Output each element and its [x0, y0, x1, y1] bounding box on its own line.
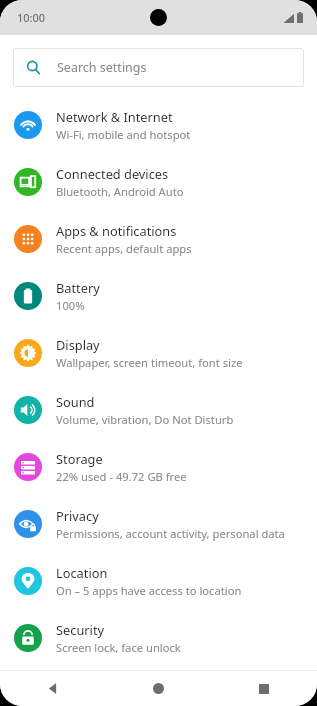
staticText: 100%	[56, 298, 85, 313]
staticText: Network & Internet	[56, 108, 173, 125]
button[interactable]: Security	[0, 609, 317, 666]
button[interactable]: Sound	[0, 381, 317, 438]
button[interactable]: Search settings	[13, 48, 304, 87]
staticText: Battery	[56, 279, 100, 296]
staticText: Display	[56, 336, 100, 353]
button[interactable]: Connected devices	[0, 153, 317, 210]
button[interactable]: Recent apps	[211, 671, 317, 706]
staticText: On – 5 apps have access to location	[56, 583, 242, 598]
staticText: 22% used - 49.72 GB free	[56, 469, 187, 484]
staticText: Connected devices	[56, 165, 169, 182]
staticText: Bluetooth, Android Auto	[56, 184, 184, 199]
staticText: Privacy	[56, 507, 99, 524]
staticText: Screen lock, face unlock	[56, 640, 181, 655]
button[interactable]: Storage	[0, 438, 317, 495]
button[interactable]: Privacy	[0, 495, 317, 552]
button[interactable]: Home	[105, 671, 211, 706]
staticText: Search settings	[57, 59, 147, 76]
staticText: Location	[56, 564, 108, 581]
button[interactable]: Network & Internet	[0, 96, 317, 153]
staticText: Wallpaper, screen timeout, font size	[56, 355, 243, 370]
staticText: Recent apps, default apps	[56, 241, 192, 256]
button[interactable]: Display	[0, 324, 317, 381]
staticText: 10:00	[17, 10, 46, 25]
staticText: Wi-Fi, mobile and hotspot	[56, 127, 191, 142]
button[interactable]: Battery	[0, 267, 317, 324]
staticText: Permissions, account activity, personal …	[56, 526, 285, 541]
staticText: Volume, vibration, Do Not Disturb	[56, 412, 234, 427]
button[interactable]: Apps & notifications	[0, 210, 317, 267]
staticText: Storage	[56, 450, 103, 467]
staticText: Apps & notifications	[56, 222, 177, 239]
staticText: Sound	[56, 393, 95, 410]
staticText: Security	[56, 621, 105, 638]
button[interactable]: Back	[0, 671, 105, 706]
button[interactable]: Location	[0, 552, 317, 609]
